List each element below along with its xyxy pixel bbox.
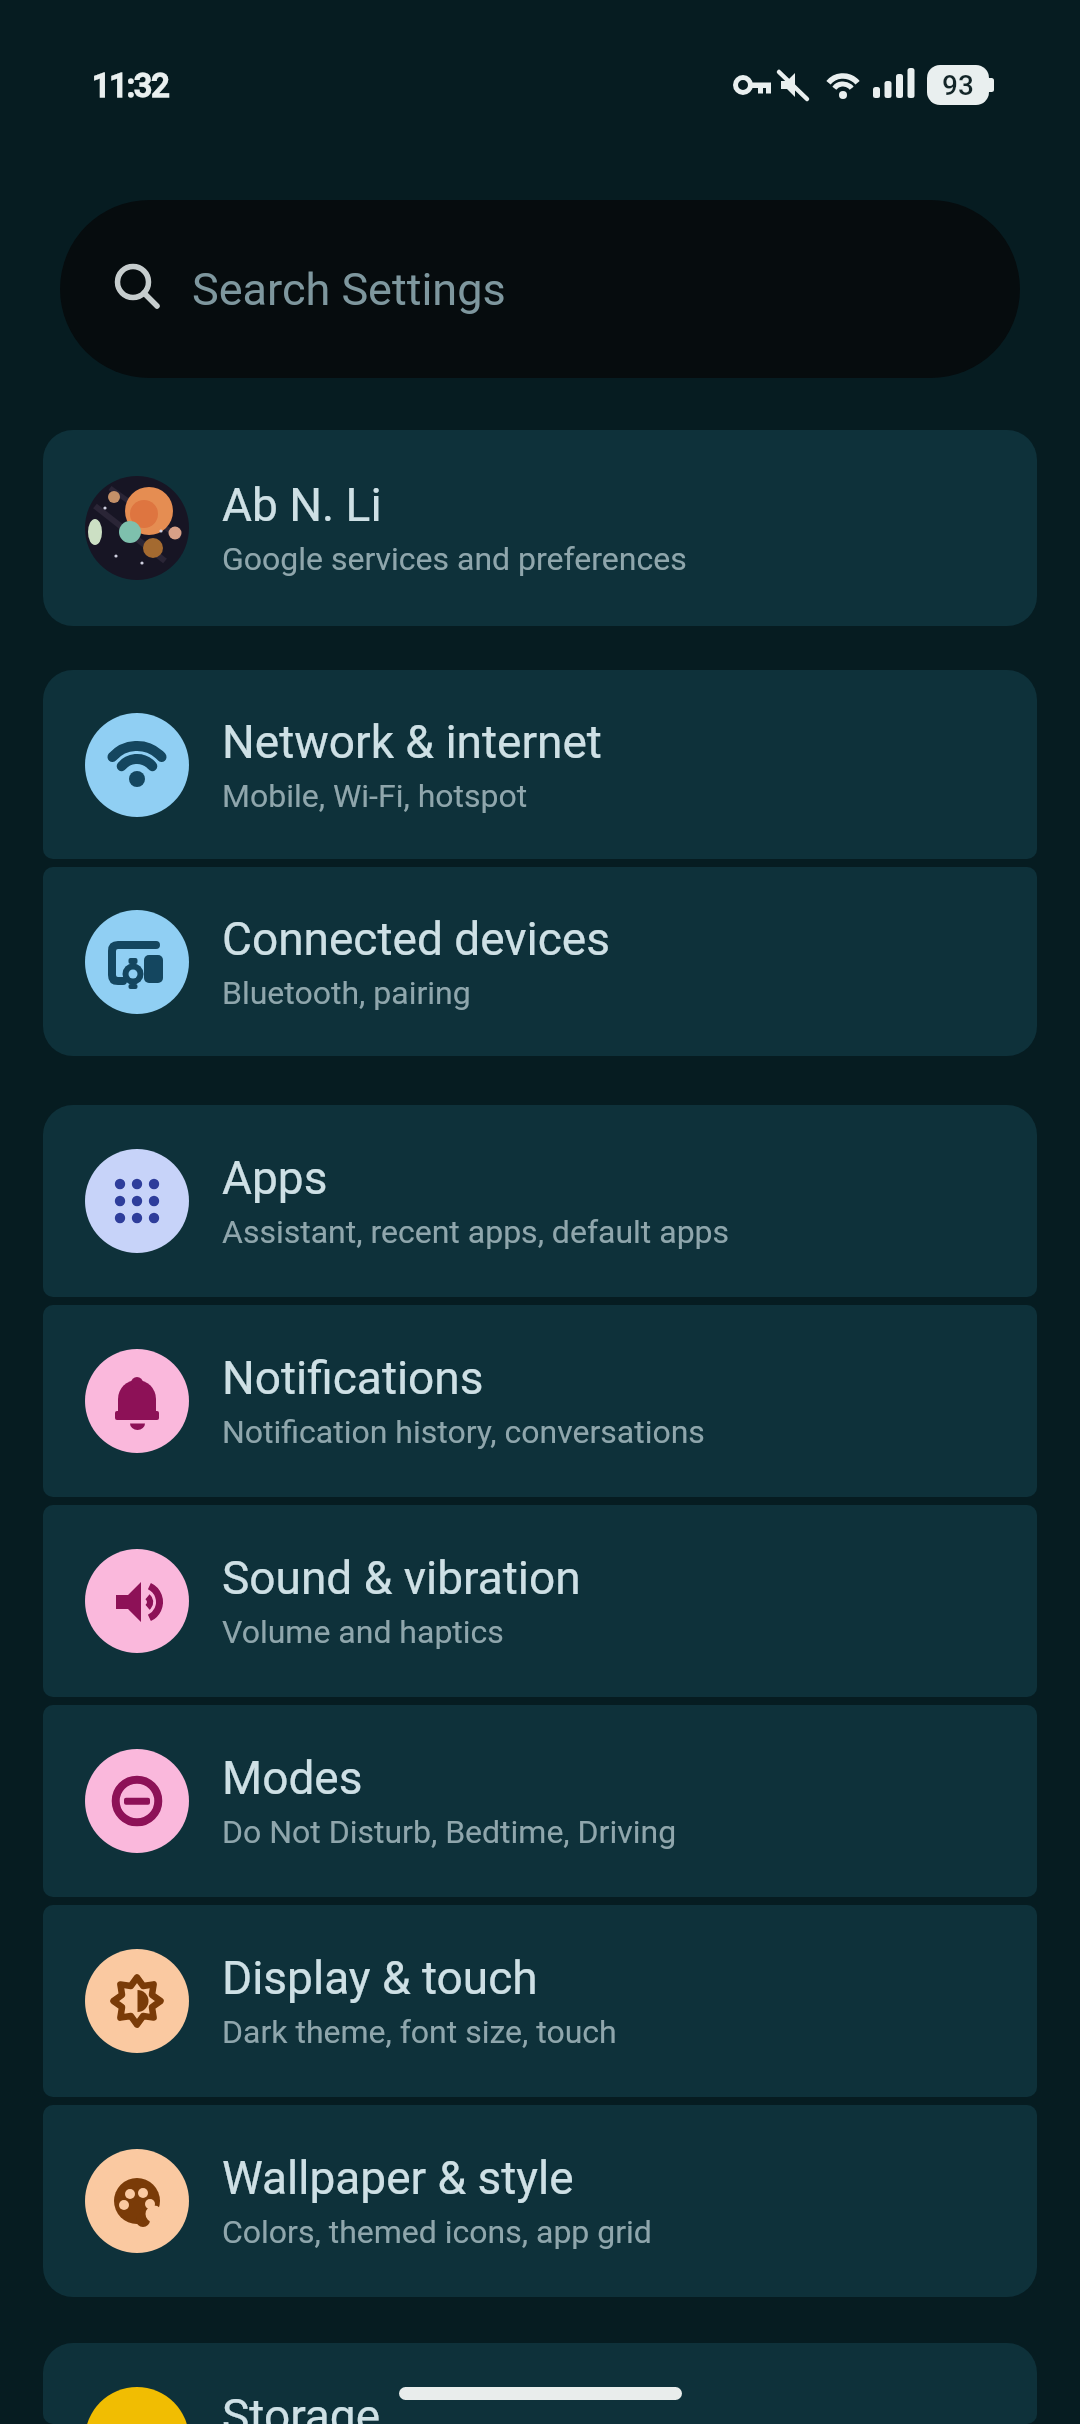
button[interactable]: Network & internet	[43, 670, 1037, 859]
staticText: Do Not Disturb, Bedtime, Driving	[222, 1813, 677, 1851]
staticText: Search Settings	[192, 263, 506, 316]
staticText: Wallpaper & style	[222, 2151, 574, 2205]
staticText: Apps	[222, 1151, 328, 1205]
button[interactable]: Sound & vibration	[43, 1505, 1037, 1697]
button[interactable]: Modes	[43, 1705, 1037, 1897]
button[interactable]: Ab N. Li	[43, 430, 1037, 626]
staticText: 93	[942, 69, 974, 102]
staticText: Sound & vibration	[222, 1551, 581, 1605]
button[interactable]: Connected devices	[43, 867, 1037, 1056]
button[interactable]: Wallpaper & style	[43, 2105, 1037, 2297]
staticText: Storage	[222, 2389, 381, 2424]
staticText: Assistant, recent apps, default apps	[222, 1213, 730, 1251]
button[interactable]: Storage	[43, 2343, 1037, 2424]
button[interactable]: Display & touch	[43, 1905, 1037, 2097]
staticText: Colors, themed icons, app grid	[222, 2213, 652, 2251]
staticText: Connected devices	[222, 912, 610, 966]
staticText: Network & internet	[222, 715, 602, 769]
button[interactable]: Notifications	[43, 1305, 1037, 1497]
staticText: Notification history, conversations	[222, 1413, 705, 1451]
staticText: Dark theme, font size, touch	[222, 2013, 617, 2051]
staticText: Display & touch	[222, 1951, 538, 2005]
staticText: Mobile, Wi-Fi, hotspot	[222, 777, 528, 815]
staticText: Modes	[222, 1751, 363, 1805]
staticText: Ab N. Li	[222, 478, 382, 532]
button[interactable]: Search Settings	[60, 200, 1020, 378]
staticText: Volume and haptics	[222, 1613, 504, 1651]
button[interactable]: Apps	[43, 1105, 1037, 1297]
staticText: Notifications	[222, 1351, 484, 1405]
staticText: Google services and preferences	[222, 540, 687, 578]
staticText: Bluetooth, pairing	[222, 974, 471, 1012]
staticText: 11:32	[92, 66, 169, 105]
